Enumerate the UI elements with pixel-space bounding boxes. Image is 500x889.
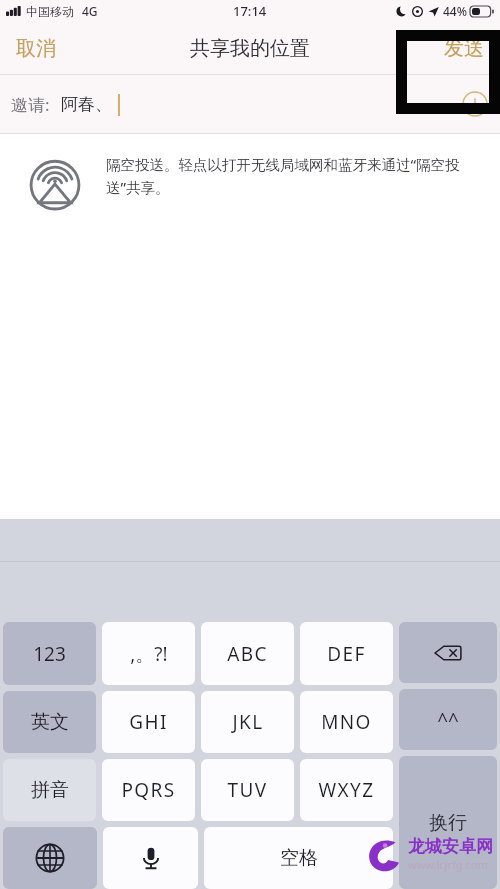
button[interactable]: 取消	[0, 22, 72, 74]
staticText: JKL	[232, 709, 264, 735]
staticText: WXYZ	[318, 777, 375, 803]
staticText: 发送	[444, 36, 484, 61]
button[interactable]: TUV	[201, 759, 294, 821]
staticText: ^^	[437, 707, 459, 733]
staticText: MNO	[321, 709, 372, 735]
button[interactable]: MNO	[300, 691, 393, 753]
button[interactable]: 英文	[3, 691, 96, 753]
button[interactable]: 拼音	[3, 759, 96, 821]
staticText: 空格	[280, 846, 318, 870]
staticText: 换行	[429, 811, 467, 835]
button[interactable]: WXYZ	[300, 759, 393, 821]
staticText: 邀请:	[11, 93, 50, 116]
button[interactable]: Switch keyboard	[3, 827, 97, 889]
staticText: TUV	[227, 777, 268, 803]
button[interactable]: Add contact	[462, 91, 488, 117]
button[interactable]: JKL	[201, 691, 294, 753]
staticText: 龙城安卓网	[408, 836, 493, 857]
button[interactable]: GHI	[102, 691, 195, 753]
button[interactable]: 123	[3, 622, 96, 685]
button[interactable]: DEF	[300, 622, 393, 685]
staticText: 取消	[16, 36, 56, 61]
staticText: 拼音	[31, 778, 69, 802]
button[interactable]: 换行	[399, 756, 497, 889]
button[interactable]: Delete	[399, 622, 497, 683]
staticText: 中国移动	[26, 4, 74, 19]
staticText: www.lcjrfg.com	[408, 857, 488, 872]
staticText: GHI	[129, 709, 168, 735]
staticText: 4G	[82, 3, 98, 19]
staticText: 123	[33, 641, 66, 667]
button[interactable]: 邀请:	[0, 75, 500, 133]
button[interactable]: Voice input	[103, 827, 198, 889]
staticText: 隔空投送。轻点以打开无线局域网和蓝牙来通过“隔空投送”共享。	[106, 154, 478, 197]
staticText: PQRS	[121, 777, 176, 803]
button[interactable]: 空格	[204, 827, 393, 889]
staticText: ABC	[227, 641, 268, 667]
staticText: 英文	[31, 710, 69, 734]
staticText: 阿春、	[61, 94, 112, 115]
button[interactable]: ,。?!	[102, 622, 195, 685]
staticText: 17:14	[233, 2, 267, 20]
button[interactable]: 发送	[428, 22, 500, 74]
button[interactable]: ABC	[201, 622, 294, 685]
staticText: 共享我的位置	[190, 36, 310, 61]
button[interactable]: ^^	[399, 689, 497, 750]
button[interactable]: PQRS	[102, 759, 195, 821]
button[interactable]: 隔空投送。轻点以打开无线局域网和蓝牙来通过“隔空投送”共享。	[0, 134, 500, 222]
staticText: 44%	[443, 3, 467, 19]
staticText: ,。?!	[130, 641, 168, 667]
staticText: DEF	[327, 641, 366, 667]
